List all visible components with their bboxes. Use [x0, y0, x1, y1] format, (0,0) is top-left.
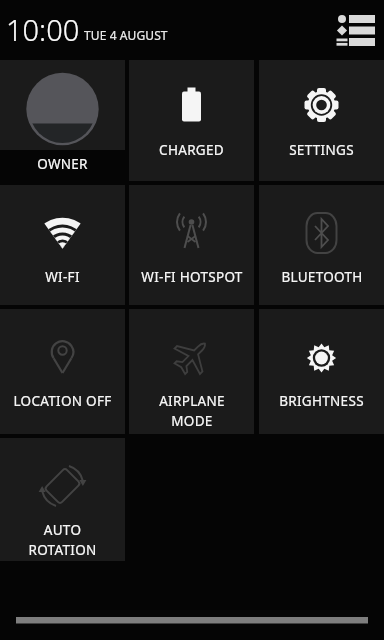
staticText: LOCATION OFF — [13, 392, 112, 410]
staticText: AUTO ROTATION — [28, 521, 97, 559]
button[interactable]: BRIGHTNESS — [259, 309, 384, 434]
button[interactable]: CHARGED — [129, 60, 254, 181]
staticText: WI-FI — [45, 268, 80, 286]
button[interactable]: LOCATION OFF — [0, 309, 125, 434]
button[interactable]: WI-FI HOTSPOT — [129, 185, 254, 305]
button[interactable]: BLUETOOTH — [259, 185, 384, 305]
staticText: BLUETOOTH — [281, 268, 363, 286]
staticText: OWNER — [37, 155, 88, 173]
button[interactable]: AUTO ROTATION — [0, 438, 125, 561]
staticText: 10:00 — [6, 10, 80, 49]
staticText: CHARGED — [159, 141, 224, 159]
button[interactable] — [328, 4, 384, 56]
button[interactable]: OWNER — [0, 60, 125, 181]
button[interactable]: WI-FI — [0, 185, 125, 305]
button[interactable]: AIRPLANE MODE — [129, 309, 254, 434]
staticText: WI-FI HOTSPOT — [141, 268, 243, 286]
staticText: AIRPLANE MODE — [159, 392, 225, 430]
staticText: BRIGHTNESS — [279, 392, 364, 410]
staticText: TUE 4 AUGUST — [84, 27, 168, 43]
staticText: SETTINGS — [289, 141, 354, 159]
button[interactable]: SETTINGS — [259, 60, 384, 181]
